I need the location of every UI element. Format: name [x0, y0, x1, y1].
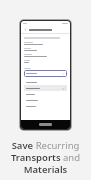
button[interactable] — [24, 103, 67, 109]
button[interactable]: Back — [23, 27, 28, 32]
button[interactable]: Home — [39, 123, 52, 126]
button[interactable] — [24, 70, 67, 77]
staticText: Save Recurring Transports and Materials — [8, 139, 83, 176]
button[interactable] — [24, 85, 67, 91]
button[interactable] — [24, 48, 67, 54]
button[interactable] — [24, 42, 67, 48]
button[interactable] — [24, 54, 67, 60]
button[interactable] — [24, 91, 67, 97]
button[interactable] — [24, 60, 67, 66]
button[interactable] — [24, 97, 67, 103]
button[interactable] — [24, 79, 67, 85]
